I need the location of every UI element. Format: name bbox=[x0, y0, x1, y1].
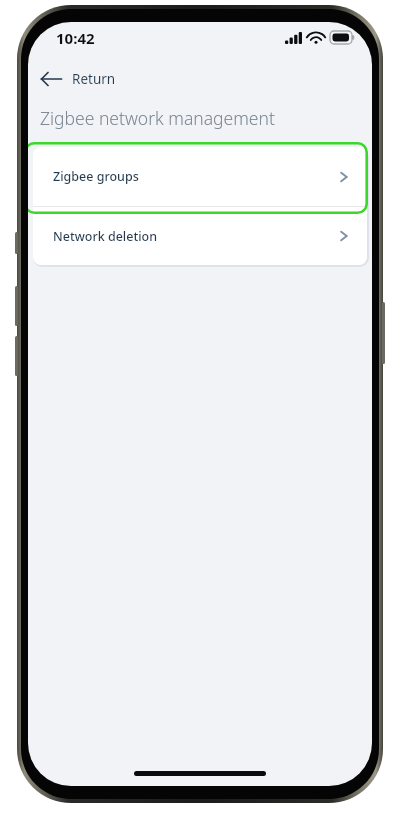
staticText: Network deletion bbox=[53, 228, 339, 245]
staticText: 10:42 bbox=[56, 28, 95, 48]
button[interactable]: Back bbox=[36, 65, 130, 93]
button[interactable]: Network deletion bbox=[33, 207, 367, 265]
other: Back bbox=[40, 70, 62, 88]
staticText: Zigbee network management bbox=[40, 106, 275, 130]
staticText: Return bbox=[72, 70, 116, 88]
button[interactable]: Zigbee groups bbox=[33, 147, 367, 206]
staticText: Zigbee groups bbox=[53, 168, 339, 185]
